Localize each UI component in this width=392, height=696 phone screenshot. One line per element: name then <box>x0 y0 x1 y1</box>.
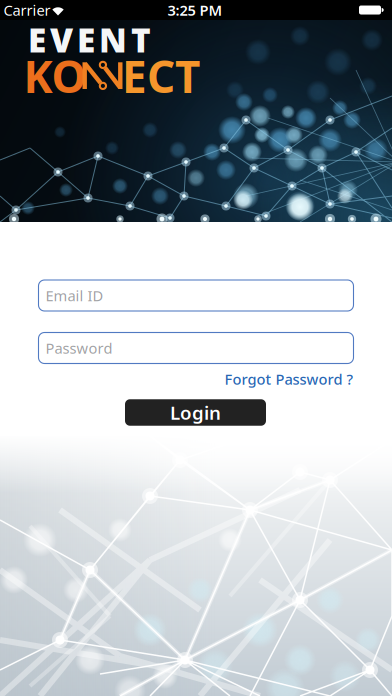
button[interactable]: Email ID <box>38 280 353 311</box>
staticText: ECT <box>122 47 200 105</box>
staticText: Carrier <box>3 0 50 20</box>
staticText: Login <box>170 400 221 425</box>
staticText: KO <box>23 47 86 105</box>
staticText: Forgot Password ? <box>224 369 353 389</box>
button[interactable]: Password <box>38 332 353 363</box>
staticText: Email ID <box>45 286 103 305</box>
button[interactable]: Forgot Password ? <box>224 369 353 389</box>
button[interactable]: Login <box>125 399 266 426</box>
staticText: EVENT <box>28 17 151 62</box>
staticText: Password <box>45 338 112 358</box>
staticText: 3:25 PM <box>167 0 222 20</box>
